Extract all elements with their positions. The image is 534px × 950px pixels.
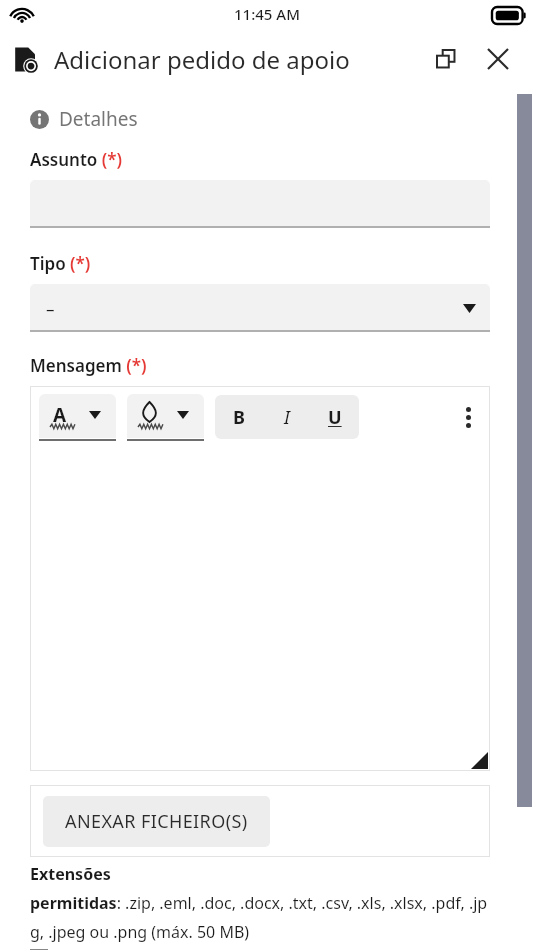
staticText: – — [46, 297, 55, 320]
button[interactable]: Restore window — [424, 37, 468, 81]
staticText: ANEXAR FICHEIRO(S) — [65, 809, 248, 834]
staticText: B — [233, 405, 245, 430]
button[interactable]: Text colour — [39, 394, 116, 441]
button[interactable]: Close — [476, 37, 520, 81]
button[interactable]: B — [215, 395, 263, 439]
button[interactable]: Highlight colour — [127, 394, 204, 441]
button[interactable]: ANEXAR FICHEIRO(S) — [43, 796, 270, 847]
button[interactable] — [30, 448, 490, 771]
button[interactable]: I — [263, 395, 311, 439]
button[interactable] — [30, 180, 490, 228]
staticText: 11:45 AM — [234, 4, 300, 24]
staticText: Detalhes — [59, 106, 138, 132]
staticText: U — [328, 405, 342, 430]
staticText: I — [284, 405, 290, 430]
button[interactable]: – — [30, 284, 490, 332]
staticText: Mensagem (*) — [30, 354, 147, 377]
button[interactable]: More options — [446, 395, 490, 439]
staticText: Extensões permitidas: .zip, .eml, .doc, … — [30, 863, 490, 942]
staticText: A — [53, 402, 67, 428]
staticText: Assunto (*) — [30, 148, 122, 171]
button[interactable]: U — [311, 395, 359, 439]
staticText: Tipo (*) — [30, 252, 91, 275]
staticText: Adicionar pedido de apoio — [54, 43, 350, 76]
